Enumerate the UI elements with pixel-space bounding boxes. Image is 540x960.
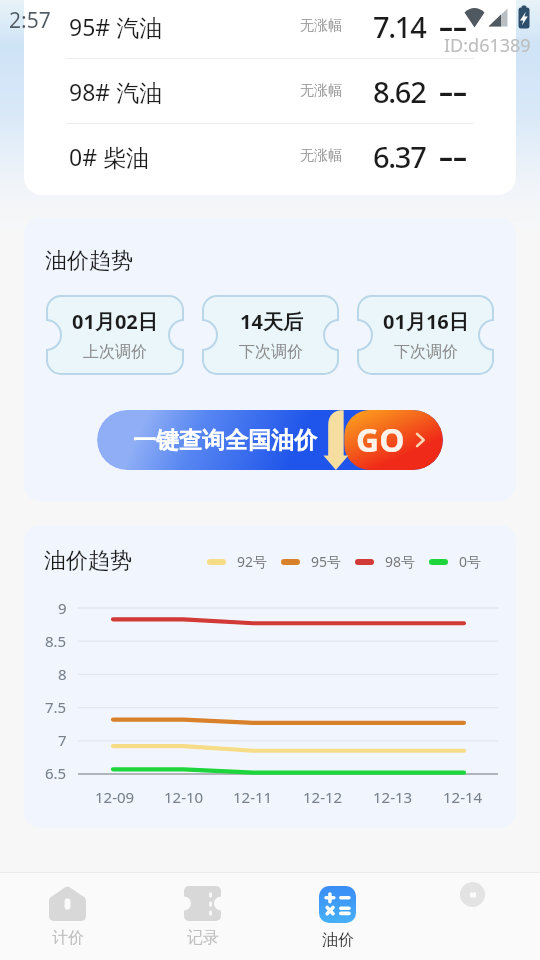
staticText: 无涨幅 — [300, 82, 342, 100]
staticText: 9 — [58, 598, 67, 618]
staticText: 7.14 — [373, 7, 426, 46]
staticText: 一键查询全国油价 — [133, 426, 317, 455]
staticText: 7 — [58, 730, 67, 750]
staticText: 0号 — [459, 552, 482, 571]
button[interactable]: 计价 — [0, 873, 135, 960]
staticText: 95号 — [311, 552, 342, 571]
staticText: 12-11 — [233, 787, 273, 807]
button[interactable]: 油价 — [270, 873, 405, 960]
staticText: 2:57 — [9, 6, 51, 35]
staticText: 01月16日 — [383, 308, 469, 335]
staticText: 上次调价 — [83, 342, 147, 362]
staticText: 12-09 — [95, 787, 135, 807]
staticText: 12-10 — [164, 787, 204, 807]
staticText: 计价 — [52, 928, 84, 948]
staticText: ID:d61389 — [444, 33, 531, 58]
staticText: 01月02日 — [72, 308, 158, 335]
button[interactable]: 95# 汽油 — [24, 0, 516, 58]
staticText: –– — [439, 137, 468, 175]
staticText: 记录 — [187, 928, 219, 948]
staticText: 油价趋势 — [45, 247, 133, 275]
button[interactable]: 14天后 — [202, 295, 339, 375]
staticText: GO — [356, 418, 405, 462]
staticText: 8 — [58, 664, 67, 684]
staticText: 12-14 — [443, 787, 483, 807]
staticText: 油价 — [322, 930, 354, 950]
button[interactable]: Pause — [460, 882, 485, 907]
staticText: 7.5 — [45, 697, 67, 717]
staticText: –– — [439, 72, 468, 110]
staticText: 8.62 — [373, 72, 426, 111]
staticText: 无涨幅 — [300, 17, 342, 35]
button[interactable]: 一键查询全国油价 — [97, 410, 443, 470]
staticText: 12-13 — [373, 787, 413, 807]
staticText: 6.5 — [45, 763, 67, 783]
staticText: 8.5 — [45, 631, 67, 651]
staticText: 6.37 — [373, 137, 426, 176]
button[interactable]: 0# 柴油 — [24, 124, 516, 188]
staticText: 98号 — [385, 552, 416, 571]
button[interactable]: 01月02日 — [46, 295, 184, 375]
button[interactable]: 记录 — [135, 873, 270, 960]
staticText: 95# 汽油 — [69, 11, 163, 42]
staticText: –– — [439, 7, 468, 45]
staticText: 油价趋势 — [44, 547, 132, 575]
staticText: 98# 汽油 — [69, 76, 163, 107]
staticText: 0# 柴油 — [69, 141, 149, 172]
button[interactable]: 01月16日 — [357, 295, 494, 375]
staticText: 无涨幅 — [300, 147, 342, 165]
button[interactable]: 98# 汽油 — [24, 59, 516, 123]
staticText: 92号 — [237, 552, 268, 571]
staticText: 14天后 — [240, 308, 303, 335]
staticText: 12-12 — [303, 787, 343, 807]
staticText: 下次调价 — [239, 342, 303, 362]
staticText: 下次调价 — [394, 342, 458, 362]
